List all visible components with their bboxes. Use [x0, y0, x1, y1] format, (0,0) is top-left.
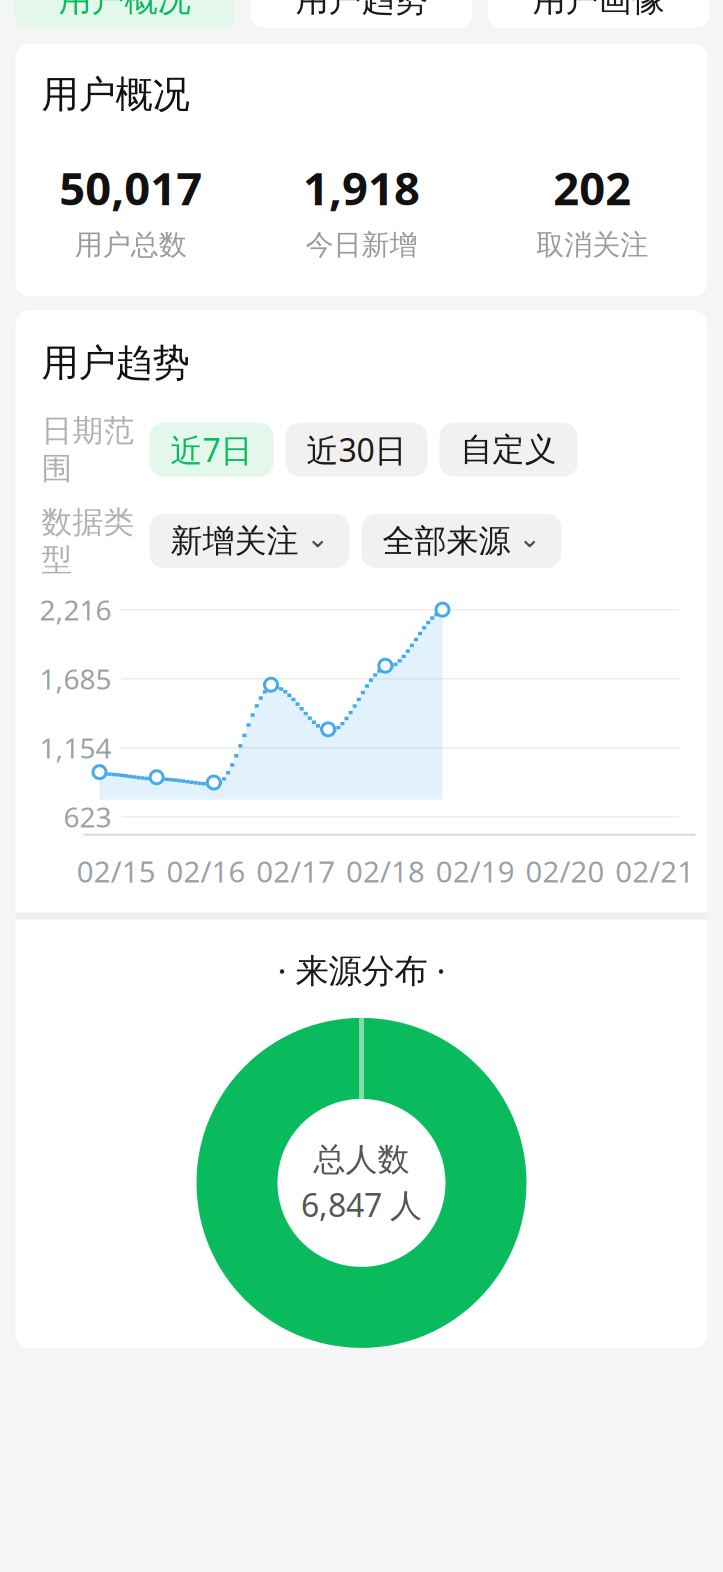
staticText: 数据类型	[41, 503, 134, 579]
staticText: 自定义	[460, 430, 556, 469]
button[interactable]: 用户画像	[488, 0, 709, 28]
staticText: 1,918	[303, 158, 420, 218]
staticText: 用户画像	[532, 0, 664, 20]
button[interactable]: 用户概况	[14, 0, 235, 28]
staticText: 今日新增	[305, 228, 417, 262]
staticText: 1,685	[39, 660, 111, 697]
staticText: 用户趋势	[295, 0, 427, 20]
staticText: 用户趋势	[41, 340, 189, 386]
staticText: 近30日	[306, 428, 406, 471]
button[interactable]: 近30日	[285, 423, 427, 477]
staticText: 近7日	[170, 428, 252, 471]
staticText: 新增关注	[170, 521, 298, 561]
button[interactable]: 用户趋势	[251, 0, 472, 28]
staticText: 02/20	[525, 852, 604, 891]
staticText: 02/21	[615, 852, 694, 891]
staticText: 全部来源	[382, 521, 510, 561]
staticText: 1,154	[39, 729, 111, 766]
staticText: 取消关注	[536, 228, 648, 262]
staticText: 用户概况	[58, 0, 190, 20]
staticText: 总人数	[313, 1140, 409, 1179]
staticText: ⌄	[306, 523, 328, 553]
staticText: 623	[63, 798, 111, 835]
staticText: 02/15	[77, 852, 156, 891]
button[interactable]: 近7日	[149, 423, 273, 477]
staticText: 02/18	[346, 852, 425, 891]
staticText: 6,847 人	[301, 1183, 422, 1226]
staticText: · 来源分布 ·	[277, 948, 445, 992]
staticText: 02/19	[436, 852, 515, 891]
staticText: 202	[553, 158, 631, 218]
staticText: 50,017	[59, 158, 202, 218]
staticText: 2,216	[39, 591, 111, 628]
staticText: 日期范围	[41, 412, 134, 487]
button[interactable]: 新增关注	[149, 514, 349, 568]
staticText: 用户概况	[41, 72, 189, 118]
button[interactable]: 自定义	[439, 423, 577, 477]
staticText: 02/17	[256, 852, 335, 891]
staticText: ⌄	[518, 523, 540, 553]
staticText: 用户总数	[75, 228, 187, 262]
staticText: 02/16	[167, 852, 246, 891]
button[interactable]: 全部来源	[361, 514, 561, 568]
